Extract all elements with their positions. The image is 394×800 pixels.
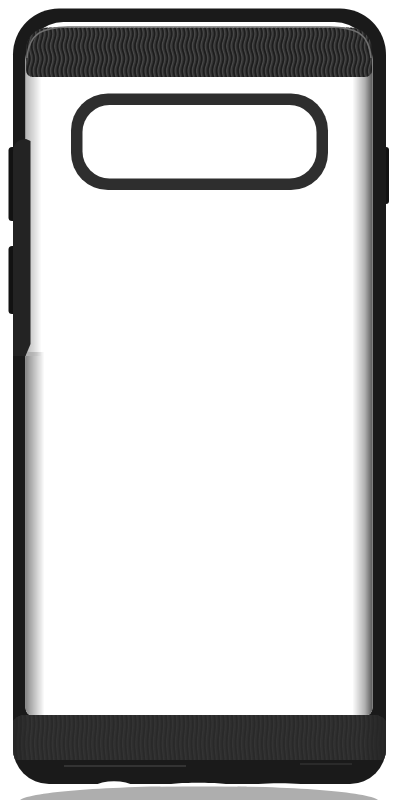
button[interactable] <box>0 0 394 800</box>
